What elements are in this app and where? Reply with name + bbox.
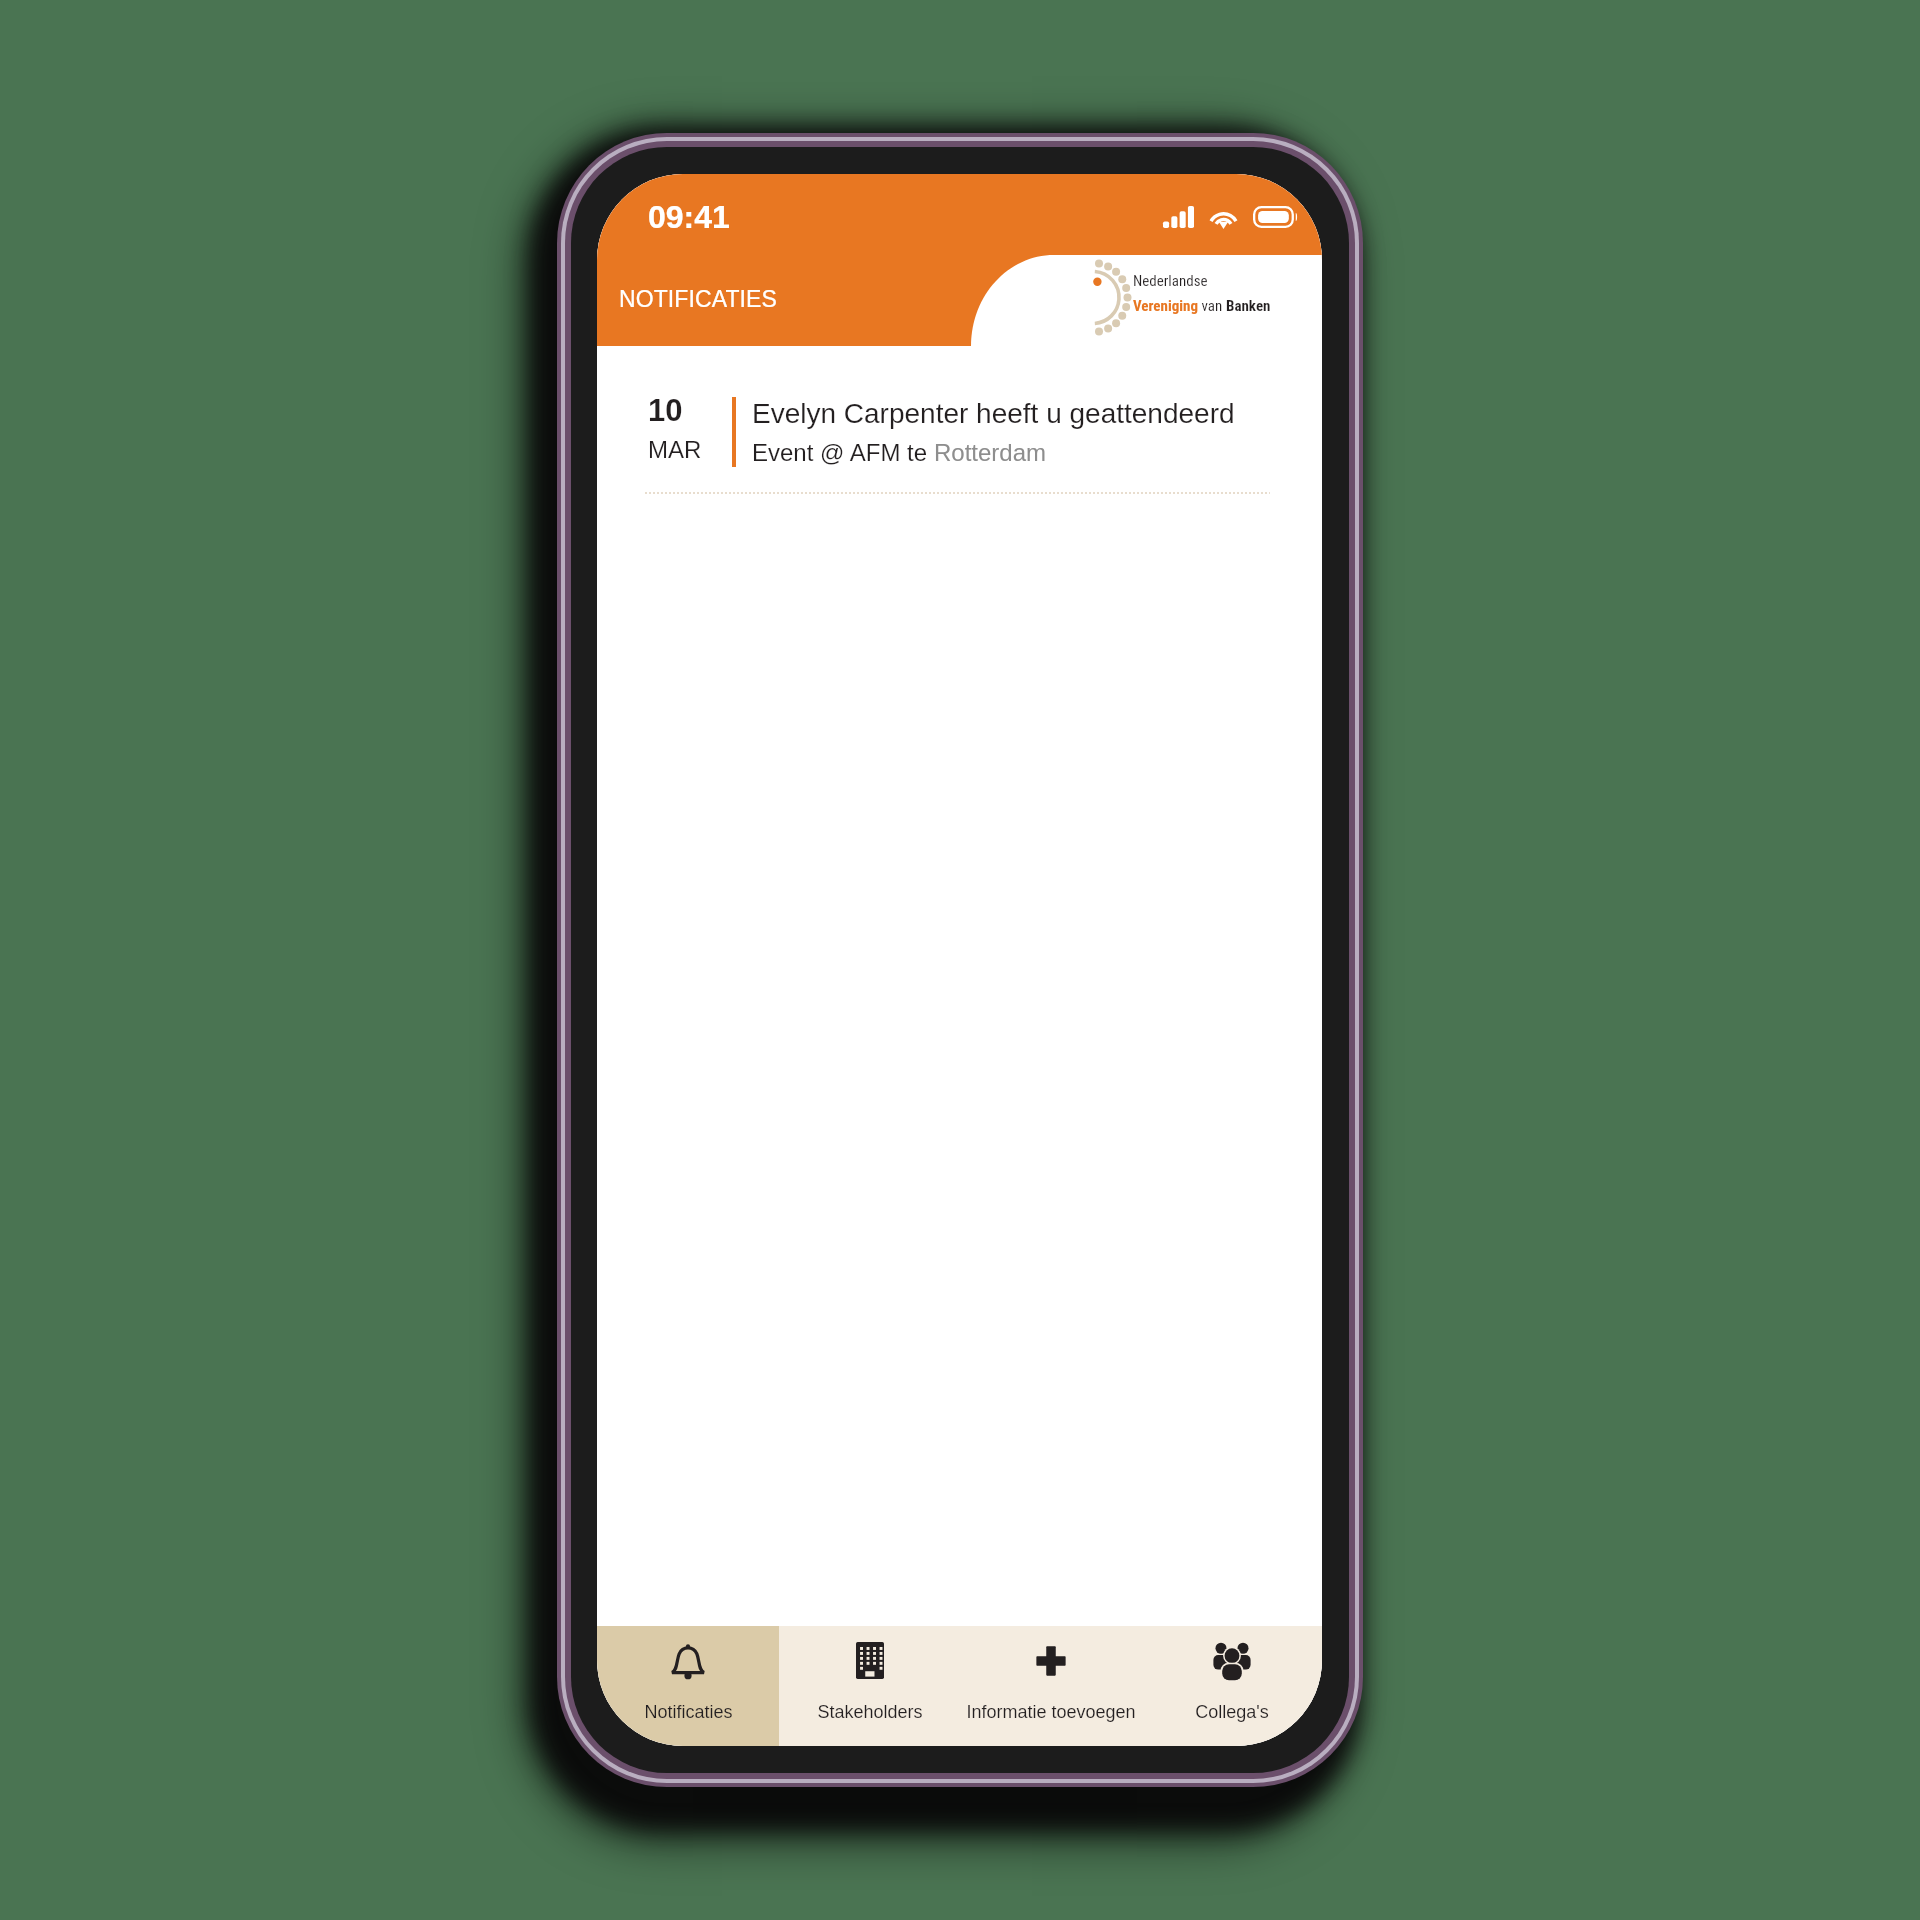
staticText: NOTIFICATIES — [619, 286, 777, 312]
staticText: van — [1198, 297, 1226, 315]
staticText: MAR — [648, 436, 702, 463]
staticText: Notificaties — [644, 1702, 733, 1722]
staticText: Stakeholders — [817, 1702, 923, 1722]
button[interactable]: Add information — [960, 1626, 1141, 1746]
staticText: Event @ AFM te — [752, 439, 934, 466]
staticText: Evelyn Carpenter heeft u geattendeerd — [752, 398, 1235, 429]
staticText: Informatie toevoegen — [966, 1702, 1136, 1722]
staticText: Nederlandse — [1133, 272, 1208, 290]
staticText: 10 — [648, 393, 683, 428]
staticText: Vereniging — [1133, 297, 1198, 315]
staticText: 09:41 — [648, 199, 730, 235]
staticText: Rotterdam — [934, 439, 1047, 466]
button[interactable]: Notifications — [597, 1626, 779, 1746]
button[interactable]: Stakeholders — [779, 1626, 960, 1746]
staticText: Banken — [1226, 297, 1271, 315]
button[interactable]: Colleagues — [1141, 1626, 1322, 1746]
staticText: Collega's — [1195, 1702, 1269, 1722]
button[interactable]: 10 — [597, 174, 1322, 504]
